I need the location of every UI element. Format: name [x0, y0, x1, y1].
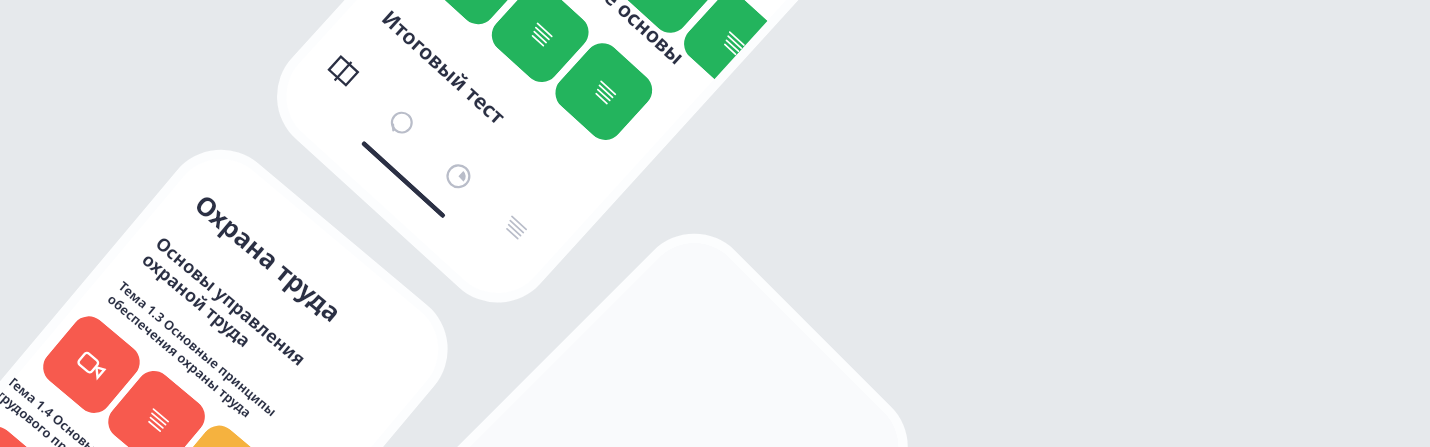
button[interactable]: Прогресс	[430, 148, 487, 204]
button[interactable]: Карточка	[613, 0, 725, 40]
staticText: Основы управления охраной труда	[137, 231, 311, 388]
staticText: Тема 1.3 Основные принципы обеспечения о…	[104, 277, 281, 434]
button[interactable]: Карточка	[166, 418, 277, 447]
button[interactable]: Карточка	[548, 36, 660, 147]
button[interactable]: Карточка	[677, 0, 767, 79]
button[interactable]: Книга	[315, 43, 371, 99]
button[interactable]: Меню	[486, 199, 543, 256]
button[interactable]: Чат	[372, 95, 429, 152]
staticText: Тема 1.4 Основы трудового права	[0, 374, 100, 447]
staticText: Охрана труда	[188, 186, 349, 329]
button[interactable]: Видео	[36, 309, 147, 420]
button[interactable]: Карточка	[101, 364, 212, 447]
staticText: Теоретические основы	[487, 0, 691, 71]
staticText: Итоговый тест	[376, 4, 512, 131]
button[interactable]: Карточка	[484, 0, 596, 89]
button[interactable]: Карточка	[421, 0, 532, 32]
button[interactable]: Карточка	[0, 419, 54, 447]
